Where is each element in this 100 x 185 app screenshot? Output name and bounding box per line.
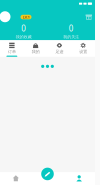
button[interactable]: LV.1 [20, 15, 31, 19]
button[interactable]: Profile [63, 172, 95, 185]
staticText: 足迹 [55, 49, 63, 54]
staticText: LV.1 [22, 14, 29, 20]
button[interactable]: 0 [0, 25, 47, 38]
button[interactable]: 足迹 [47, 40, 71, 57]
staticText: 0 [21, 23, 26, 34]
staticText: 0 [69, 23, 74, 34]
staticText: 订单 [8, 49, 16, 54]
button[interactable]: 0 [47, 25, 95, 38]
button[interactable]: Home [0, 172, 32, 185]
staticText: 我的收藏 [16, 34, 32, 39]
button[interactable]: Compose [41, 168, 54, 180]
staticText: 设置 [79, 49, 87, 54]
staticText: 我的关注 [63, 34, 79, 39]
button[interactable]: 设置 [71, 40, 95, 57]
button[interactable]: Coupons [85, 12, 93, 21]
staticText: 我的 [32, 49, 40, 54]
button[interactable]: 我的 [24, 40, 48, 57]
button[interactable]: 订单 [0, 40, 24, 57]
